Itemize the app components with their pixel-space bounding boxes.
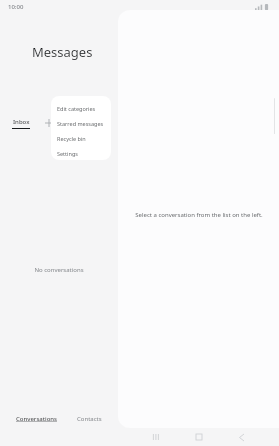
button[interactable]: Edit categories xyxy=(51,101,111,116)
staticText: Conversations xyxy=(16,415,57,423)
button[interactable]: Add category xyxy=(42,116,56,130)
staticText: 10:00 xyxy=(8,3,24,11)
staticText: Inbox xyxy=(13,118,30,126)
button[interactable]: Home xyxy=(188,428,210,446)
button[interactable]: Conversations xyxy=(13,413,60,425)
staticText: Starred messages xyxy=(57,120,104,127)
staticText: Recycle bin xyxy=(57,135,86,142)
button[interactable]: Settings xyxy=(51,146,111,160)
button[interactable]: Recents xyxy=(145,428,167,446)
staticText: Messages xyxy=(32,43,93,61)
staticText: Edit categories xyxy=(57,105,96,112)
button[interactable]: Back xyxy=(230,428,252,446)
button[interactable]: Starred messages xyxy=(51,116,111,131)
staticText: Contacts xyxy=(77,415,102,423)
button[interactable]: Contacts xyxy=(74,413,105,425)
staticText: Settings xyxy=(57,150,78,157)
staticText: Select a conversation from the list on t… xyxy=(135,211,263,219)
staticText: No conversations xyxy=(0,266,118,274)
button[interactable]: Inbox xyxy=(10,117,32,130)
button[interactable]: Recycle bin xyxy=(51,131,111,146)
